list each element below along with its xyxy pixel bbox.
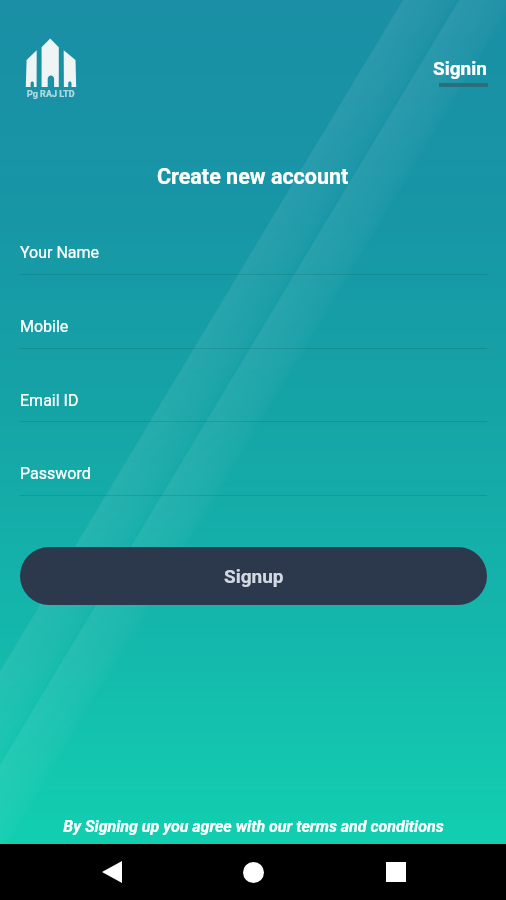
button[interactable]: By Signing up you agree with our terms a… <box>51 815 456 838</box>
button[interactable]: Email ID <box>20 380 487 422</box>
staticText: Signup <box>224 565 284 587</box>
button[interactable]: Password <box>20 453 487 496</box>
button[interactable]: Your Name <box>20 232 487 275</box>
staticText: Create new account <box>157 164 349 189</box>
button[interactable]: Home <box>215 844 292 900</box>
staticText: Your Name <box>20 243 100 262</box>
staticText: Password <box>20 464 91 483</box>
button[interactable]: Recent apps <box>357 844 434 900</box>
button[interactable]: Back <box>73 844 150 900</box>
staticText: Email ID <box>20 391 79 410</box>
staticText: Pg RAJ LTD <box>27 89 75 100</box>
button[interactable]: Signin <box>423 51 497 93</box>
staticText: Mobile <box>20 317 69 336</box>
staticText: Signin <box>433 57 487 79</box>
staticText: By Signing up you agree with our terms a… <box>63 817 444 836</box>
button[interactable]: Mobile <box>20 306 487 349</box>
button[interactable]: Signup <box>20 547 487 605</box>
button[interactable]: App logo <box>18 28 80 102</box>
